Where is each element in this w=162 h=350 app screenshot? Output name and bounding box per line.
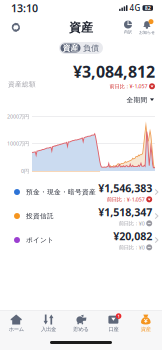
staticText: 前日比：¥0 xyxy=(119,220,145,227)
button[interactable]: 貯める xyxy=(65,314,97,333)
button[interactable]: 全期間 xyxy=(122,94,158,106)
staticText: 資産 xyxy=(69,20,93,35)
staticText: 0円 xyxy=(21,167,29,175)
button[interactable]: 1 xyxy=(97,314,130,333)
staticText: ホーム xyxy=(9,326,24,333)
staticText: 内訳 xyxy=(124,29,132,34)
button[interactable]: 入出金 xyxy=(32,314,65,333)
staticText: 4G xyxy=(129,3,140,13)
staticText: ¥1,518,347 xyxy=(98,205,152,219)
button[interactable]: 投資信託 xyxy=(0,204,162,228)
staticText: ¥3,084,812 xyxy=(73,61,155,82)
staticText: 2000万円 xyxy=(7,113,29,120)
staticText: 口座 xyxy=(108,326,118,333)
button[interactable]: お知らせ xyxy=(137,17,157,37)
staticText: 負債 xyxy=(83,43,99,53)
button[interactable]: 更新 xyxy=(5,16,27,38)
staticText: 13:10 xyxy=(11,1,38,15)
staticText: 82 xyxy=(145,4,151,12)
button[interactable]: 資産 xyxy=(130,314,162,333)
staticText: ¥20,082 xyxy=(113,229,152,243)
staticText: 前日比：¥0 xyxy=(119,244,145,251)
staticText: 入出金 xyxy=(41,326,56,333)
staticText: 投資信託 xyxy=(26,212,54,220)
button[interactable]: 負債 xyxy=(80,43,101,52)
staticText: 全期間 xyxy=(126,96,147,104)
staticText: 資産総額 xyxy=(8,80,36,88)
staticText: 1 xyxy=(118,313,120,319)
staticText: 預金・現金・暗号資産 xyxy=(26,188,96,196)
button[interactable]: 預金・現金・暗号資産 xyxy=(0,180,162,204)
staticText: 資産 xyxy=(62,43,78,53)
staticText: 1000万円 xyxy=(7,140,29,147)
staticText: ポイント xyxy=(26,236,54,244)
staticText: 前日比：¥-1,057 xyxy=(109,83,147,90)
button[interactable]: ポイント xyxy=(0,228,162,252)
staticText: ¥1,546,383 xyxy=(98,181,152,195)
staticText: お知らせ xyxy=(139,30,155,35)
button[interactable]: 資産 xyxy=(60,43,80,52)
button[interactable]: ホーム xyxy=(0,314,32,333)
staticText: 資産 xyxy=(141,326,151,333)
staticText: 前日比：¥-1,057 xyxy=(107,196,145,203)
staticText: 貯める xyxy=(73,326,88,333)
button[interactable]: 内訳 xyxy=(119,17,137,37)
